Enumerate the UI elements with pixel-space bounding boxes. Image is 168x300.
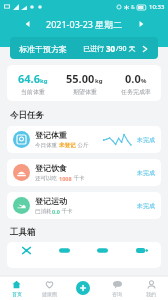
staticText: 未完成 [137,136,155,144]
staticText: 0.0 [52,208,60,215]
staticText: 工具箱 [10,227,36,238]
staticText: 未登记 [59,142,76,149]
staticText: 公斤 [76,141,89,149]
button[interactable]: 登记饮食 [7,159,161,186]
staticText: 今日任务 [10,110,44,121]
button[interactable]: Tool 3 [122,246,161,268]
staticText: 10:33 [149,3,165,11]
staticText: 首页 [12,291,22,297]
staticText: 任务完成率 [121,88,151,96]
staticText: 已消耗 [35,208,52,215]
staticText: /90 天 [116,44,136,54]
staticText: 1008 [59,175,72,182]
staticText: 未完成 [137,169,155,177]
button[interactable]: 我的 [134,276,168,300]
button[interactable]: 咨询 [100,276,134,300]
button[interactable]: 0.0 [110,71,161,96]
staticText: 登记运动 [35,196,67,206]
button[interactable]: 55.00 [59,71,110,96]
staticText: 健康圈 [42,291,57,297]
button[interactable]: 64.6 [7,71,59,96]
staticText: 还可以吃 [35,174,59,182]
staticText: 今日体重 [35,141,59,149]
button[interactable]: 首页 [0,276,33,300]
staticText: 登记体重 [35,130,67,140]
staticText: 千卡 [60,207,73,215]
staticText: kg [40,77,48,85]
button[interactable]: Add [76,281,90,295]
button[interactable]: Tool 0 [7,246,45,268]
staticText: % [141,77,147,85]
staticText: 已进行 [83,44,106,54]
button[interactable]: Tool 1 [45,246,83,268]
button[interactable]: 登记体重 [7,126,161,153]
staticText: 55.00 [66,71,95,86]
staticText: 标准干预方案 [19,44,67,54]
staticText: 未完成 [137,202,155,210]
staticText: 咨询 [112,291,122,297]
button[interactable]: 标准干预方案 [10,37,158,59]
button[interactable]: Previous day [20,16,36,32]
staticText: 千卡 [72,174,85,182]
staticText: 64.6 [18,71,40,86]
staticText: 我的 [146,291,156,297]
staticText: 期望体重 [73,88,97,96]
staticText: 当前体重 [21,88,45,96]
staticText: 0.0 [125,71,141,86]
button[interactable]: Next day [133,16,149,32]
staticText: 2021-03-23 星期二 [46,18,123,30]
button[interactable]: 健康圈 [33,276,66,300]
staticText: kg [95,77,103,85]
staticText: 登记饮食 [35,163,67,173]
button[interactable]: 登记运动 [7,192,161,219]
staticText: & [131,4,135,11]
staticText: 30 [106,43,116,54]
button[interactable]: Tool 2 [83,246,122,268]
